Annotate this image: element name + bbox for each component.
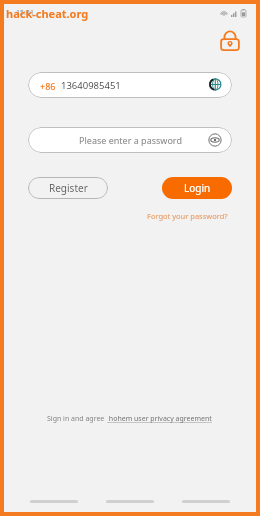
- staticText: Register: [49, 181, 88, 195]
- button[interactable]: Forgot your password?: [145, 209, 230, 223]
- button[interactable]: Please enter a password: [28, 127, 232, 153]
- staticText: Forgot your password?: [147, 211, 228, 221]
- staticText: 15:41: [16, 8, 34, 18]
- staticText: +86: [40, 80, 56, 92]
- staticText: 13640985451: [61, 79, 121, 92]
- button[interactable]: +86: [28, 72, 232, 98]
- button[interactable]: Show password: [208, 133, 222, 147]
- button[interactable]: Select country code: [208, 78, 222, 92]
- staticText: Please enter a password: [79, 134, 182, 146]
- button[interactable]: hohem user privacy agreement: [107, 414, 214, 424]
- button[interactable]: Login: [162, 177, 232, 199]
- button[interactable]: Register: [28, 177, 108, 199]
- staticText: Login: [184, 181, 211, 195]
- button[interactable]: Security: [218, 29, 242, 53]
- staticText: Sign in and agree: [47, 414, 107, 424]
- staticText: hohem user privacy agreement: [107, 414, 214, 424]
- staticText: hack-cheat.org: [6, 6, 89, 21]
